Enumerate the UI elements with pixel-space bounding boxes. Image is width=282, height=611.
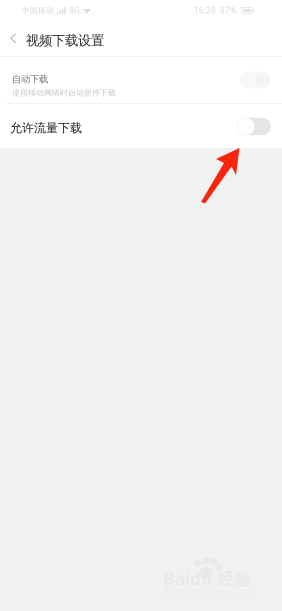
staticText: 4G (69, 5, 80, 16)
button[interactable]: Back (0, 21, 26, 56)
staticText: 87% (220, 5, 237, 16)
button[interactable]: 允许流量下载 (0, 104, 282, 149)
staticText: 自动下载 (12, 73, 48, 85)
staticText: 中国移动 (22, 6, 54, 15)
staticText: 16:28 (194, 5, 216, 16)
staticText: 视频下载设置 (26, 32, 104, 49)
staticText: 允许流量下载 (10, 121, 82, 135)
button[interactable]: 自动下载 (0, 57, 282, 103)
staticText: 使用移动网络时自动暂停下载 (12, 88, 116, 98)
staticText: Baidu 经验 (163, 567, 251, 590)
